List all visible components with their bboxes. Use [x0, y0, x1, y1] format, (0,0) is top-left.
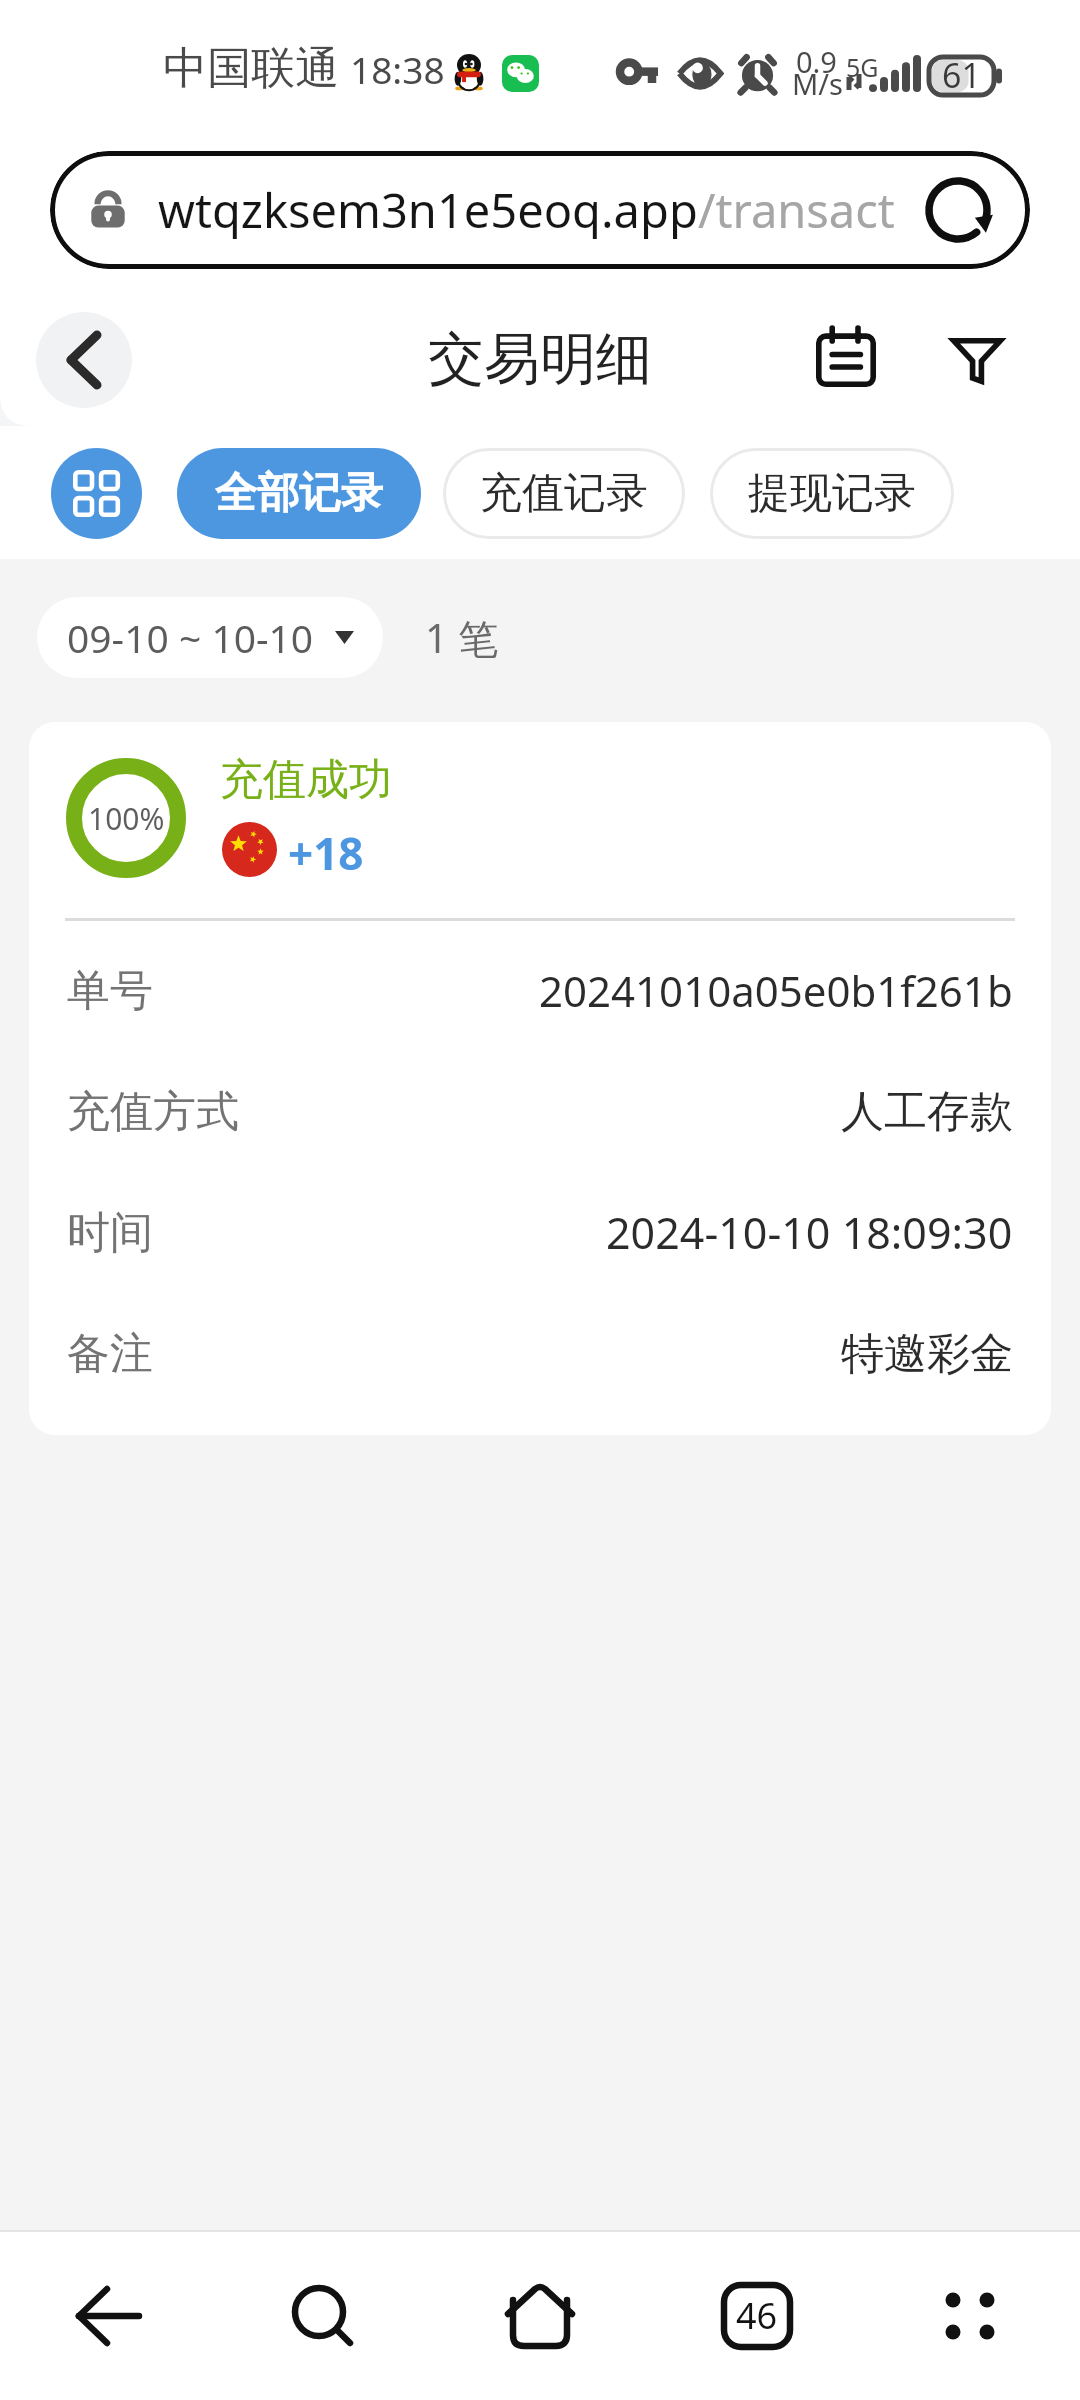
button[interactable]: Back: [53, 2261, 163, 2371]
button[interactable]: Categories: [51, 448, 142, 539]
staticText: 充值成功: [220, 753, 392, 807]
staticText: 交易明细: [428, 324, 652, 395]
staticText: 充值记录: [480, 467, 648, 520]
staticText: wtqzksem3n1e5eoq.app: [158, 178, 698, 242]
staticText: 中国联通: [163, 41, 339, 96]
staticText: 提现记录: [748, 467, 916, 520]
staticText: M/s: [792, 64, 843, 103]
other: Reload: [912, 164, 1004, 256]
button[interactable]: Home: [485, 2261, 595, 2371]
staticText: +18: [288, 823, 364, 883]
staticText: 备注: [67, 1327, 153, 1381]
staticText: 单号: [67, 964, 153, 1018]
button[interactable]: 充值记录: [443, 448, 685, 539]
staticText: 充值方式: [67, 1085, 239, 1139]
button[interactable]: Tabs: [702, 2261, 812, 2371]
staticText: 46: [736, 2291, 778, 2340]
staticText: 1 笔: [425, 610, 499, 665]
staticText: 时间: [67, 1206, 153, 1260]
button[interactable]: 全部记录: [177, 448, 421, 539]
staticText: 20241010a05e0b1f261b: [539, 962, 1013, 1019]
button[interactable]: Back: [36, 312, 132, 408]
staticText: 100%: [88, 798, 165, 839]
button[interactable]: More options: [915, 2261, 1025, 2371]
staticText: 5G: [846, 50, 879, 84]
staticText: 09-10 ~ 10-10: [67, 611, 314, 664]
staticText: 18:38: [350, 44, 445, 94]
button[interactable]: Filter: [939, 323, 1015, 399]
staticText: 人工存款: [841, 1085, 1013, 1139]
button[interactable]: Search: [264, 2257, 374, 2367]
button[interactable]: 09-10 ~ 10-10: [37, 597, 383, 678]
button[interactable]: wtqzksem3n1e5eoq.app: [50, 151, 1030, 269]
staticText: 特邀彩金: [841, 1327, 1013, 1381]
button[interactable]: Calendar: [808, 319, 884, 395]
staticText: /transact: [698, 178, 895, 242]
staticText: 全部记录: [215, 467, 383, 520]
staticText: 0.9: [796, 42, 837, 81]
staticText: 2024-10-10 18:09:30: [606, 1203, 1013, 1262]
staticText: 61: [942, 52, 981, 98]
button[interactable]: 提现记录: [710, 448, 954, 539]
